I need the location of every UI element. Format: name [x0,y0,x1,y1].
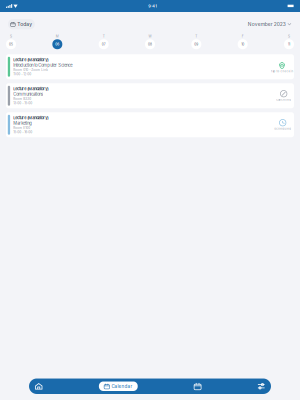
staticText: 9:41 [148,4,157,8]
staticText: Tap to check in [270,70,293,73]
button[interactable]: Home [35,382,42,390]
button[interactable]: F [238,34,248,49]
button[interactable]: Calendar [99,381,138,391]
button[interactable]: Lecture (Mandatory) [6,83,294,108]
button[interactable]: S [6,34,16,49]
staticText: Introduction to Computer Science [13,63,72,68]
staticText: T [195,34,197,38]
button[interactable]: Lecture (Mandatory) [6,112,294,137]
staticText: M [56,34,59,38]
staticText: 07 [102,42,106,46]
staticText: Lecture (Mandatory) [13,86,48,91]
staticText: 09 [194,42,198,46]
staticText: S [10,34,12,38]
staticText: Room B330 [13,97,31,101]
staticText: S [288,34,290,38]
staticText: Lecture (Mandatory) [13,57,48,62]
staticText: F [242,34,244,38]
button[interactable]: S [284,34,294,49]
button[interactable]: W [145,34,155,49]
button[interactable]: November 2023 [247,19,292,29]
staticText: T [103,34,105,38]
staticText: Communications [13,92,43,97]
staticText: Calendar [111,383,132,389]
staticText: Cancelled [276,98,291,101]
staticText: Room E100 [13,126,30,130]
staticText: 10 [241,42,244,46]
staticText: Lecture (Mandatory) [13,115,48,120]
staticText: 11 [288,42,290,46]
staticText: 15:00 - 16:00 [13,130,32,134]
button[interactable]: Settings [257,382,265,390]
button[interactable]: Lecture (Mandatory) [6,54,294,79]
staticText: Room 010 - Zoom Link [13,68,48,72]
staticText: 08 [148,42,152,46]
button[interactable]: Today [8,19,35,29]
staticText: 11:00 - 12:00 [13,72,31,76]
button[interactable]: Schedule [194,383,201,390]
staticText: Today [17,21,32,27]
staticText: W [148,34,151,38]
staticText: 05 [9,42,13,46]
staticText: 13:00 - 15:00 [13,101,32,105]
staticText: Scheduled [274,127,291,130]
button[interactable]: T [99,34,109,49]
staticText: Marketing [13,121,32,126]
staticText: 06 [55,42,59,46]
button[interactable]: M [52,34,62,49]
button[interactable]: T [191,34,201,49]
staticText: November 2023 [248,21,286,27]
